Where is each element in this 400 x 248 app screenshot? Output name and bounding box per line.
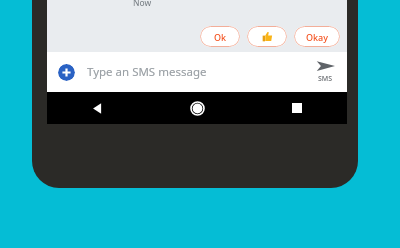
button[interactable]: Send SMS — [303, 52, 347, 92]
button[interactable]: Okay — [294, 26, 340, 47]
button[interactable]: Type an SMS message — [87, 52, 303, 92]
button[interactable] — [247, 26, 287, 47]
button[interactable]: Ok — [200, 26, 240, 47]
button[interactable]: Home — [147, 92, 247, 124]
button[interactable]: Attach — [58, 64, 75, 81]
staticText: Okay — [306, 31, 328, 43]
button[interactable]: Recent apps — [247, 92, 347, 124]
button[interactable]: Back — [47, 92, 147, 124]
staticText: Ok — [214, 31, 227, 43]
staticText: Type an SMS message — [87, 64, 207, 80]
staticText: Now — [133, 0, 152, 9]
staticText: SMS — [318, 74, 333, 84]
